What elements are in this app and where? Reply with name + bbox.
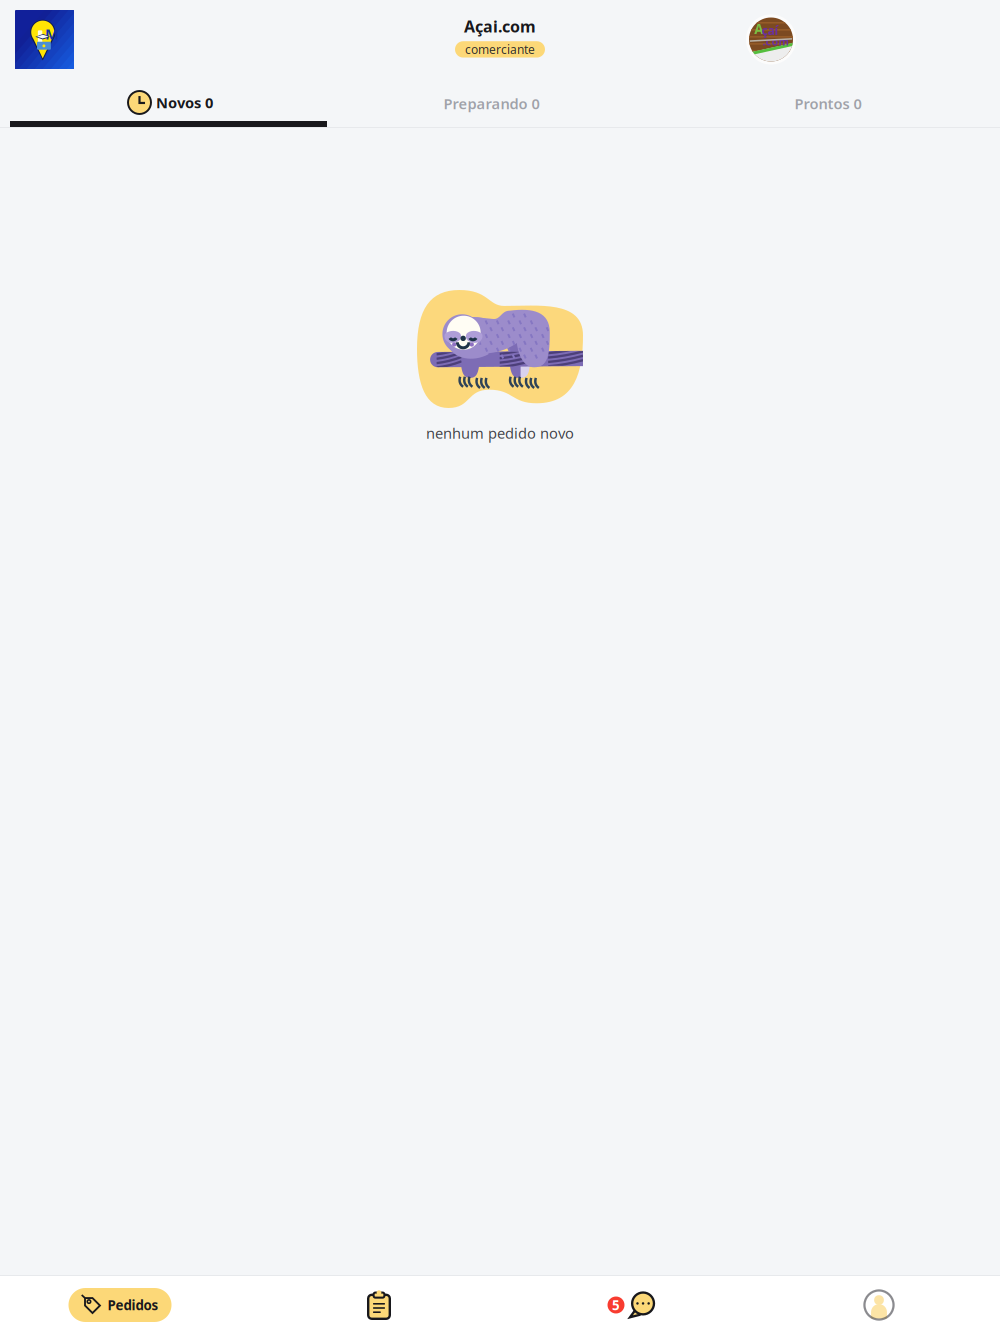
button[interactable]: Mensagens, 5 não lidas	[500, 1276, 750, 1334]
button[interactable]: Novos 0	[0, 79, 327, 128]
button[interactable]: Conta	[750, 1276, 1000, 1334]
button[interactable]: Pedidos	[0, 1276, 250, 1334]
button[interactable]: Abrir menu	[0, 0, 89, 79]
staticText: Novos 0	[156, 92, 213, 112]
staticText: Preparando 0	[443, 93, 539, 113]
staticText: comerciante	[465, 41, 535, 57]
staticText: .com	[762, 34, 788, 48]
button[interactable]: Prontos 0	[656, 79, 1000, 128]
staticText: Pedidos	[107, 1296, 158, 1314]
staticText: Prontos 0	[794, 93, 861, 113]
staticText: A	[754, 20, 763, 38]
staticText: Açai.com	[464, 15, 536, 37]
staticText: çaí	[762, 22, 779, 38]
button[interactable]: Cardápio	[250, 1276, 500, 1334]
button[interactable]: Perfil da loja	[746, 0, 1000, 78]
staticText: nenhum pedido novo	[426, 423, 574, 443]
button[interactable]: Preparando 0	[327, 79, 656, 128]
staticText: M	[45, 24, 59, 44]
staticText: 5	[612, 1296, 620, 1314]
